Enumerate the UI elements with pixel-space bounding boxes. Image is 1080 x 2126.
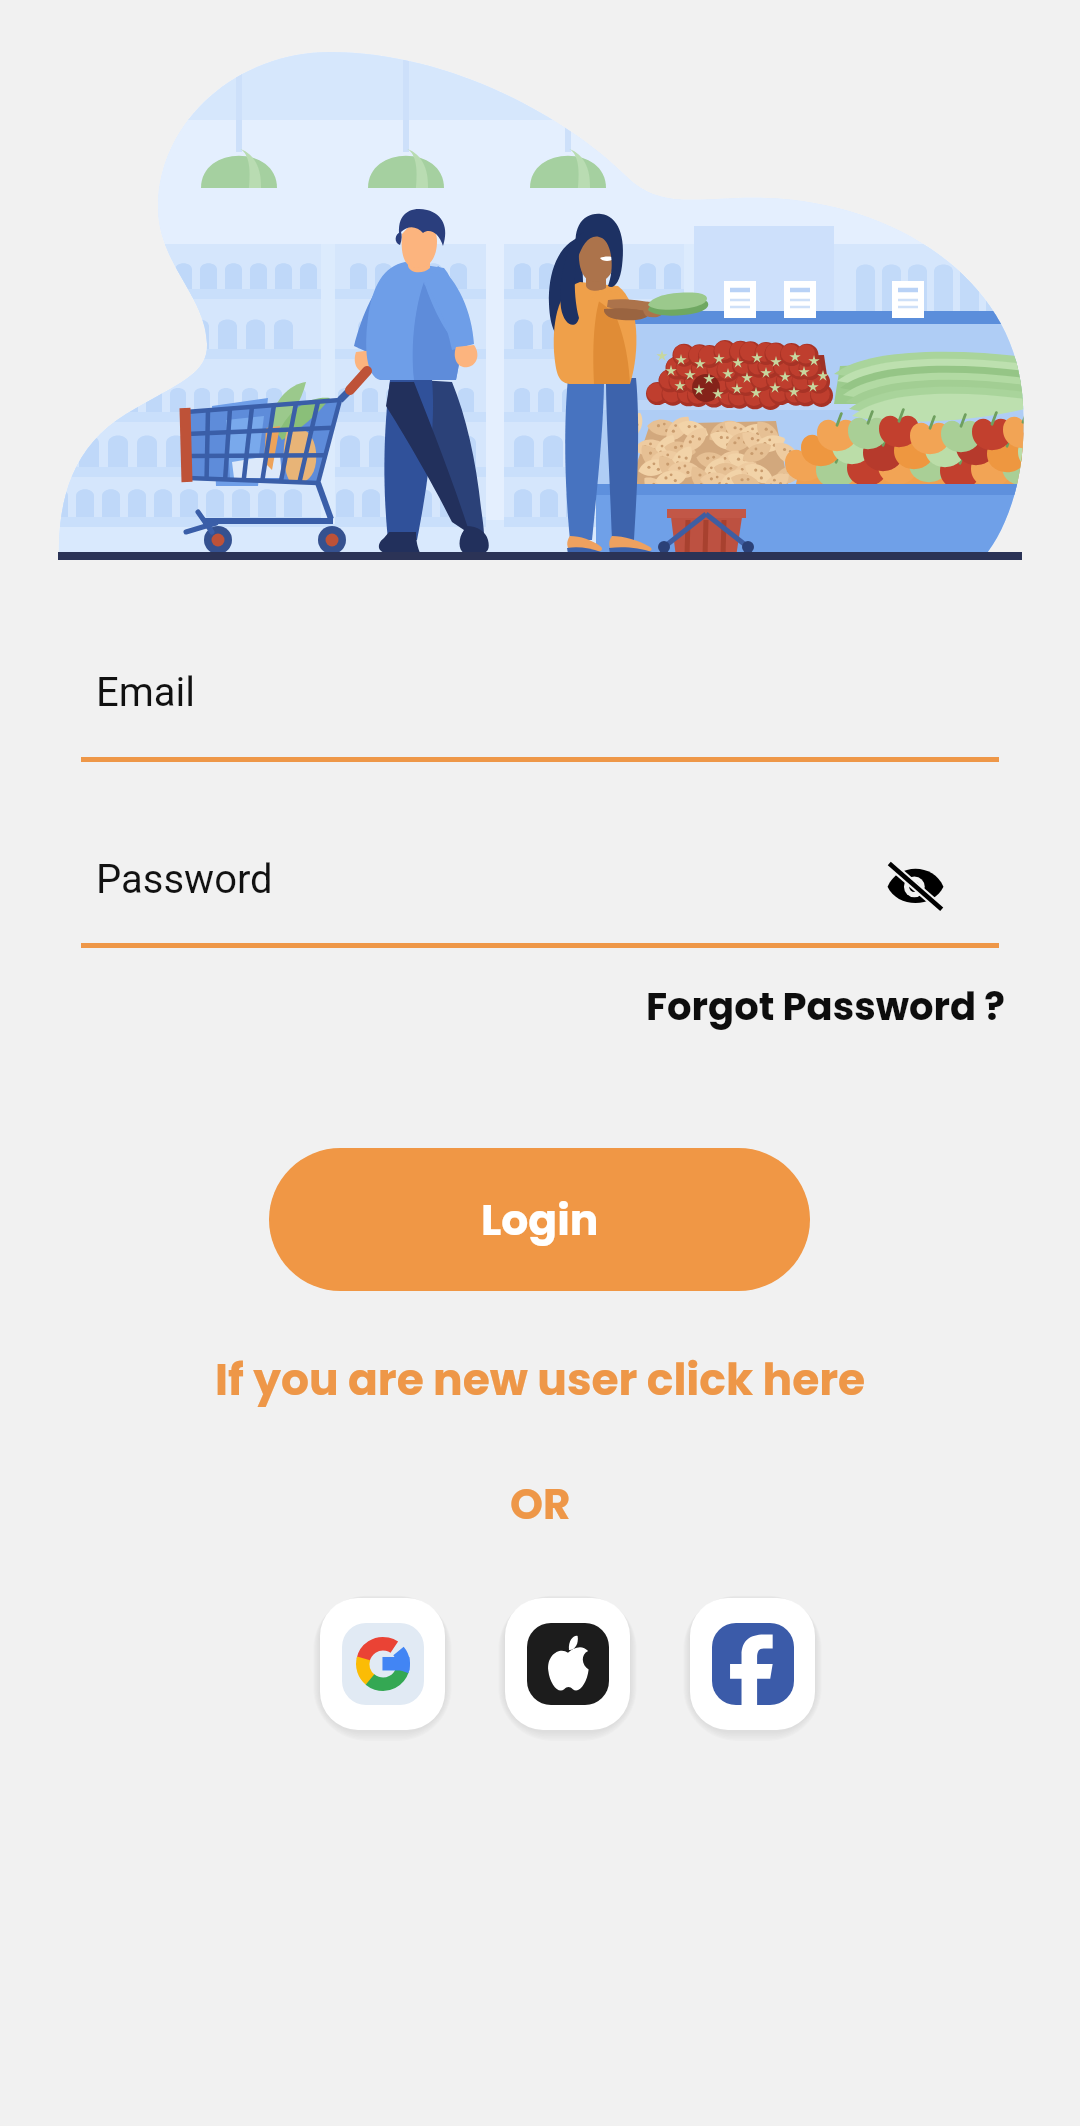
button[interactable]: Sign in with Google [320, 1598, 445, 1730]
staticText: Password [96, 856, 273, 903]
button[interactable]: Sign in with Facebook [690, 1598, 815, 1730]
button[interactable]: Show password [866, 847, 964, 925]
button[interactable]: If you are new user click here [209, 1345, 872, 1415]
staticText: OR [510, 1475, 571, 1534]
staticText: Login [481, 1190, 599, 1249]
staticText: Forgot Password ? [646, 980, 1006, 1034]
button[interactable]: Sign in with Apple [505, 1598, 630, 1730]
staticText: If you are new user click here [215, 1349, 866, 1411]
staticText: Email [96, 669, 196, 716]
button[interactable] [81, 830, 999, 948]
button[interactable] [81, 640, 999, 762]
button[interactable]: Forgot Password ? [642, 976, 1010, 1038]
button[interactable]: Login [269, 1148, 810, 1291]
